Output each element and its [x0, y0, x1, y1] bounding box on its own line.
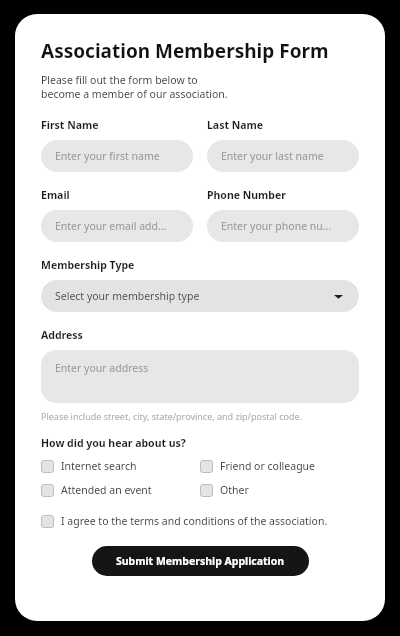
staticText: Email: [41, 188, 70, 202]
staticText: Enter your address: [55, 361, 149, 375]
staticText: become a member of our association.: [41, 87, 228, 101]
staticText: First Name: [41, 118, 99, 132]
staticText: Select your membership type: [55, 289, 334, 303]
staticText: Internet search: [61, 459, 137, 473]
staticText: Submit Membership Application: [116, 554, 285, 568]
staticText: Address: [41, 328, 83, 342]
button[interactable]: I agree to the terms and conditions of t…: [41, 514, 359, 528]
staticText: Enter your last name: [221, 149, 324, 163]
button[interactable]: Internet search: [41, 459, 200, 473]
staticText: Enter your email add...: [55, 219, 167, 233]
staticText: Last Name: [207, 118, 264, 132]
staticText: Membership Type: [41, 258, 135, 272]
staticText: Other: [220, 483, 249, 497]
staticText: I agree to the terms and conditions of t…: [61, 514, 328, 528]
staticText: Phone Number: [207, 188, 286, 202]
staticText: Please include street, city, state/provi…: [41, 410, 302, 422]
staticText: Association Membership Form: [41, 38, 329, 64]
staticText: Friend or colleague: [220, 459, 316, 473]
staticText: Please fill out the form below to: [41, 73, 198, 87]
button[interactable]: Attended an event: [41, 483, 200, 497]
button[interactable]: Friend or colleague: [200, 459, 359, 473]
button[interactable]: Enter your email add...: [41, 210, 193, 242]
button[interactable]: Other: [200, 483, 359, 497]
button[interactable]: Enter your address: [41, 350, 359, 403]
button[interactable]: Submit Membership Application: [92, 546, 309, 576]
staticText: How did you hear about us?: [41, 436, 186, 450]
button[interactable]: Select your membership type: [41, 280, 359, 312]
button[interactable]: Enter your first name: [41, 140, 193, 172]
button[interactable]: Enter your last name: [207, 140, 359, 172]
staticText: Enter your phone nu...: [221, 219, 332, 233]
staticText: Enter your first name: [55, 149, 160, 163]
staticText: Attended an event: [61, 483, 152, 497]
button[interactable]: Enter your phone nu...: [207, 210, 359, 242]
